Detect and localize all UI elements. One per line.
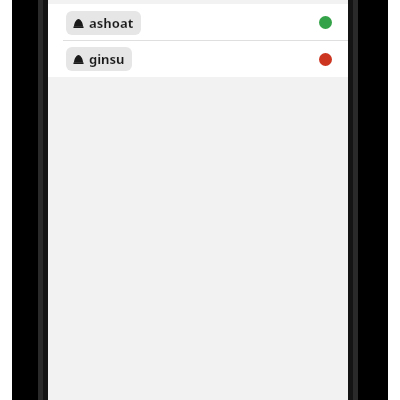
other: Cloud <box>73 18 84 29</box>
button[interactable]: Cloud <box>48 4 348 41</box>
other: Status <box>319 16 332 29</box>
staticText: ginsu <box>89 50 125 68</box>
staticText: ashoat <box>89 14 134 32</box>
button[interactable]: Cloud <box>48 41 348 77</box>
other: Cloud <box>73 54 84 65</box>
other: Status <box>319 53 332 66</box>
